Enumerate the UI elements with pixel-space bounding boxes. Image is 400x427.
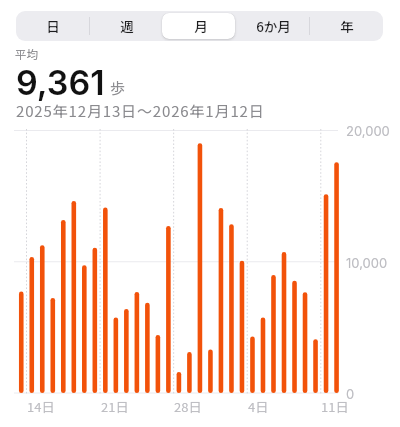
staticText: 年 <box>340 16 354 36</box>
staticText: 21日 <box>101 397 129 416</box>
button[interactable]: 年 <box>310 11 383 41</box>
staticText: 11日 <box>321 397 349 416</box>
staticText: 週 <box>120 16 134 36</box>
button[interactable]: 6か月 <box>237 11 310 41</box>
button[interactable]: 月 <box>164 11 237 41</box>
staticText: 日 <box>46 16 60 36</box>
staticText: 10,000 <box>346 255 388 271</box>
staticText: 6か月 <box>256 16 291 36</box>
staticText: 0 <box>346 386 355 402</box>
staticText: 28日 <box>174 397 202 416</box>
staticText: 月 <box>194 16 208 36</box>
staticText: 14日 <box>27 397 55 416</box>
staticText: 平均 <box>15 46 38 63</box>
staticText: 20,000 <box>346 123 390 139</box>
button[interactable]: 週 <box>90 11 164 41</box>
other: Step count bar chart <box>0 0 400 427</box>
staticText: 4日 <box>248 397 269 416</box>
staticText: 歩 <box>110 77 126 99</box>
staticText: 2025年12月13日〜2026年1月12日 <box>16 100 265 122</box>
staticText: 9,361 <box>16 62 105 103</box>
button[interactable]: 日 <box>16 11 90 41</box>
